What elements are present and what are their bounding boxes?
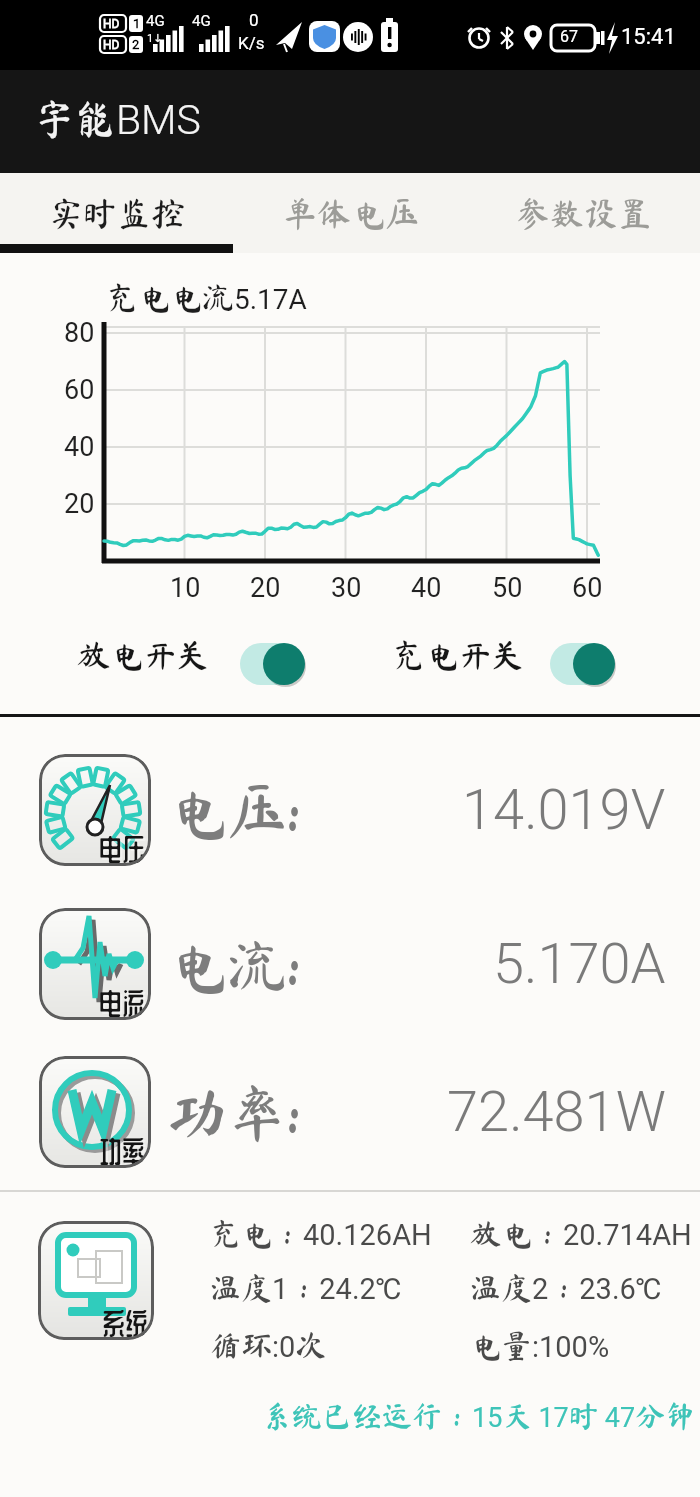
staticText: 2: [132, 37, 140, 52]
staticText: 40: [411, 572, 442, 604]
staticText: 电压: [99, 834, 145, 864]
button[interactable]: 实时监控: [0, 173, 234, 253]
staticText: HD: [103, 17, 120, 31]
staticText: 4G: [192, 12, 211, 30]
button[interactable]: 功率: [39, 1056, 151, 1168]
staticText: 放电开关: [77, 638, 209, 671]
staticText: 67: [560, 27, 578, 46]
staticText: 温度2：23.6℃: [470, 1272, 662, 1306]
staticText: 0: [249, 10, 259, 30]
staticText: 实时监控: [49, 196, 185, 230]
staticText: 30: [331, 572, 362, 604]
staticText: 充电：40.126AH: [210, 1218, 432, 1252]
button[interactable]: 单体电压: [234, 173, 467, 253]
staticText: 宇能BMS: [34, 96, 201, 144]
staticText: 72.481W: [447, 1079, 666, 1145]
staticText: 循环:0次: [210, 1330, 327, 1364]
staticText: 充电开关: [392, 638, 524, 671]
staticText: 放电：20.714AH: [470, 1218, 692, 1252]
staticText: 电压:: [167, 780, 301, 840]
staticText: 参数设置: [516, 196, 652, 230]
staticText: 功率: [99, 1136, 145, 1166]
staticText: 充电电流5.17A: [106, 281, 307, 316]
staticText: 14.019V: [462, 777, 666, 843]
staticText: 1: [133, 16, 141, 31]
staticText: 单体电压: [283, 196, 419, 230]
staticText: 1↓: [147, 32, 163, 45]
button[interactable]: [548, 640, 618, 690]
staticText: 60: [64, 374, 95, 406]
button[interactable]: 参数设置: [467, 173, 700, 253]
staticText: 电流:: [167, 934, 301, 994]
staticText: 5.170A: [493, 931, 666, 997]
staticText: 40: [64, 431, 95, 463]
staticText: 10: [170, 572, 201, 604]
staticText: 功率:: [167, 1082, 301, 1142]
staticText: 电量:100%: [470, 1330, 610, 1364]
button[interactable]: [238, 640, 308, 690]
staticText: 50: [492, 572, 523, 604]
staticText: 系统: [102, 1308, 148, 1338]
staticText: 20: [64, 488, 95, 520]
staticText: HD: [103, 38, 120, 52]
staticText: 80: [64, 317, 95, 349]
staticText: 15:41: [621, 24, 676, 50]
button[interactable]: 系统: [38, 1221, 154, 1340]
staticText: 温度1：24.2℃: [210, 1272, 402, 1306]
staticText: 20: [250, 572, 281, 604]
staticText: 60: [572, 572, 603, 604]
button[interactable]: 电流: [39, 908, 151, 1020]
staticText: K/s: [238, 33, 265, 53]
staticText: 电流: [99, 988, 145, 1018]
button[interactable]: 电压: [39, 754, 151, 866]
staticText: 4G: [146, 12, 165, 30]
staticText: 系统已经运行：15天 17时 47分钟: [262, 1401, 696, 1434]
